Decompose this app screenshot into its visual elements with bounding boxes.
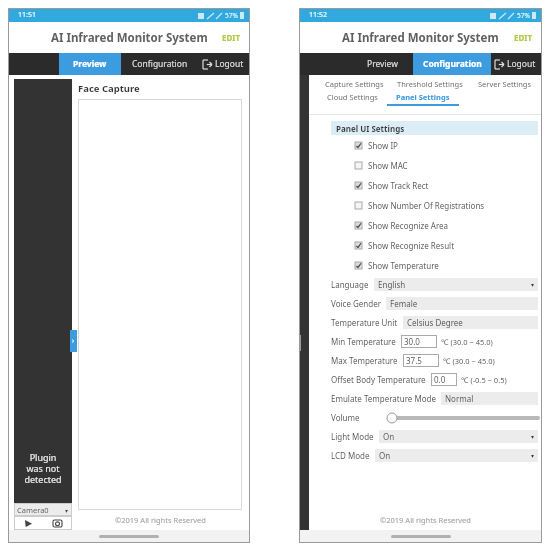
staticText: Plugin was not detected bbox=[24, 451, 62, 485]
button[interactable]: Threshold Settings bbox=[392, 79, 467, 89]
staticText: Show IP bbox=[368, 140, 398, 151]
button[interactable]: 37.5 bbox=[403, 354, 439, 367]
staticText: Show Temperature bbox=[368, 260, 439, 271]
staticText: Volume bbox=[331, 412, 360, 423]
staticText: Preview bbox=[73, 58, 107, 70]
button[interactable]: Show Temperature bbox=[355, 255, 542, 275]
button[interactable]: On bbox=[379, 430, 538, 443]
staticText: Celsius Degree bbox=[407, 317, 463, 328]
staticText: Preview bbox=[367, 58, 398, 70]
button[interactable]: Panel Settings bbox=[387, 92, 459, 106]
staticText: › bbox=[72, 336, 75, 346]
other: Logout bbox=[495, 60, 504, 69]
staticText: Show Track Rect bbox=[368, 180, 429, 191]
staticText: ▾ bbox=[65, 507, 69, 514]
staticText: 11:51 bbox=[18, 10, 36, 20]
other: Capture photo bbox=[53, 520, 62, 527]
staticText: Max Temperature bbox=[331, 355, 398, 366]
button[interactable]: Celsius Degree bbox=[403, 316, 538, 329]
button[interactable]: Logout bbox=[203, 53, 244, 75]
staticText: ℃ (30.0 ~ 45.0) bbox=[441, 337, 493, 347]
button[interactable]: EDIT bbox=[512, 30, 535, 45]
staticText: ℃ (-0.5 ~ 0.5) bbox=[461, 375, 507, 385]
staticText: ▾ bbox=[531, 433, 535, 440]
staticText: Server Settings bbox=[478, 79, 532, 89]
staticText: ©2019 All rights Reserved bbox=[115, 515, 206, 525]
button[interactable]: Capture Settings bbox=[317, 79, 392, 89]
staticText: Normal bbox=[445, 393, 474, 404]
button[interactable]: Preview bbox=[351, 53, 413, 75]
button[interactable]: Show Number Of Registrations bbox=[355, 195, 542, 215]
other: Logout bbox=[203, 60, 212, 69]
staticText: Logout bbox=[507, 58, 536, 70]
staticText: 0.0 bbox=[434, 374, 446, 385]
staticText: ▾ bbox=[531, 281, 535, 288]
staticText: Threshold Settings bbox=[397, 79, 463, 89]
staticText: Temperature Unit bbox=[331, 317, 398, 328]
button[interactable]: EDIT bbox=[220, 30, 243, 45]
staticText: Language bbox=[331, 279, 369, 290]
staticText: Voice Gender bbox=[331, 298, 381, 309]
staticText: Emulate Temperature Mode bbox=[331, 393, 436, 404]
button[interactable]: 30.0 bbox=[401, 335, 437, 348]
staticText: 57% bbox=[517, 11, 530, 20]
staticText: Light Mode bbox=[331, 431, 374, 442]
button[interactable]: Cloud Settings bbox=[317, 92, 387, 102]
staticText: Cloud Settings bbox=[327, 92, 378, 102]
staticText: Female bbox=[390, 298, 418, 309]
staticText: ▾ bbox=[531, 452, 535, 459]
button[interactable]: Logout bbox=[495, 53, 536, 75]
button[interactable]: 0.0 bbox=[431, 373, 457, 386]
staticText: LCD Mode bbox=[331, 450, 370, 461]
staticText: 37.5 bbox=[406, 355, 422, 366]
button[interactable]: Show Recognize Result bbox=[355, 235, 542, 255]
staticText: Show MAC bbox=[368, 160, 408, 171]
staticText: On bbox=[379, 450, 391, 461]
staticText: English bbox=[378, 279, 406, 290]
button[interactable]: Preview bbox=[59, 53, 121, 75]
button[interactable]: Volume slider bbox=[386, 411, 538, 425]
staticText: Camera0 bbox=[17, 505, 49, 515]
staticText: 11:52 bbox=[309, 10, 327, 20]
staticText: Panel UI Settings bbox=[336, 123, 405, 134]
staticText: ℃ (30.0 ~ 45.0) bbox=[443, 356, 495, 366]
button[interactable]: Show Recognize Area bbox=[355, 215, 542, 235]
staticText: 57% bbox=[225, 11, 238, 20]
staticText: Configuration bbox=[423, 58, 482, 70]
button[interactable]: Capture photo bbox=[43, 516, 72, 530]
staticText: ©2019 All rights Reserved bbox=[380, 515, 471, 525]
button[interactable]: On bbox=[375, 449, 538, 462]
button[interactable]: Camera0 bbox=[14, 503, 72, 516]
button[interactable]: English bbox=[374, 278, 538, 291]
staticText: Panel Settings bbox=[396, 92, 450, 102]
staticText: Capture Settings bbox=[325, 79, 384, 89]
staticText: Configuration bbox=[132, 58, 188, 70]
staticText: 30.0 bbox=[404, 336, 420, 347]
staticText: Show Recognize Result bbox=[368, 240, 455, 251]
staticText: Min Temperature bbox=[331, 336, 396, 347]
button[interactable]: Show IP bbox=[355, 135, 542, 155]
staticText: Offset Body Temperature bbox=[331, 374, 426, 385]
other: Play bbox=[25, 520, 32, 527]
staticText: Show Number Of Registrations bbox=[368, 200, 485, 211]
button[interactable]: Configuration bbox=[121, 53, 199, 75]
button[interactable]: Show Track Rect bbox=[355, 175, 542, 195]
button[interactable]: Show MAC bbox=[355, 155, 542, 175]
staticText: Show Recognize Area bbox=[368, 220, 449, 231]
staticText: AI Infrared Monitor System bbox=[342, 30, 499, 46]
button[interactable]: Configuration bbox=[413, 53, 491, 75]
staticText: On bbox=[383, 431, 395, 442]
staticText: Face Capture bbox=[78, 82, 140, 95]
button[interactable]: Play bbox=[14, 516, 43, 530]
button[interactable]: Server Settings bbox=[467, 79, 542, 89]
staticText: AI Infrared Monitor System bbox=[51, 30, 208, 46]
button[interactable]: Normal bbox=[441, 392, 538, 405]
staticText: EDIT bbox=[222, 32, 241, 43]
staticText: EDIT bbox=[514, 32, 533, 43]
button[interactable]: Female bbox=[386, 297, 538, 310]
staticText: Logout bbox=[215, 58, 244, 70]
button[interactable]: Expand bbox=[70, 330, 77, 352]
